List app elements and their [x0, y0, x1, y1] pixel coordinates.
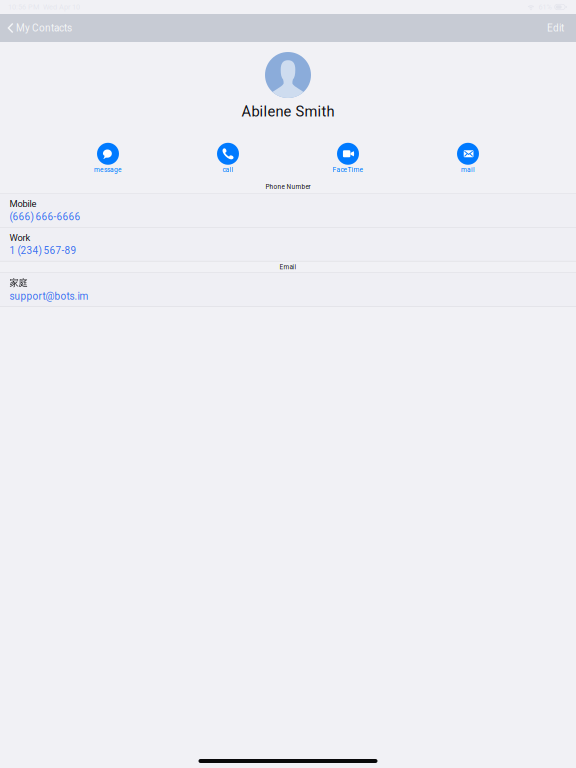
staticText: FaceTime: [332, 166, 363, 174]
staticText: Edit: [547, 22, 564, 34]
staticText: mail: [461, 166, 475, 174]
staticText: Work: [9, 232, 30, 243]
button[interactable]: call: [168, 142, 288, 174]
button[interactable]: message: [48, 142, 168, 174]
button[interactable]: My Contacts: [0, 14, 82, 42]
staticText: Abilene Smith: [241, 103, 334, 120]
button[interactable]: Edit: [537, 14, 576, 42]
staticText: (666) 666-6666: [9, 211, 80, 223]
staticText: message: [94, 166, 122, 174]
staticText: Phone Number: [265, 183, 310, 190]
staticText: support@bots.im: [9, 290, 88, 302]
button[interactable]: Mobile: [0, 194, 576, 227]
button[interactable]: Work: [0, 228, 576, 261]
staticText: call: [222, 166, 233, 174]
staticText: 家庭: [9, 277, 27, 289]
staticText: 10:56 PM Wed Apr 10: [8, 3, 80, 11]
button[interactable]: mail: [408, 142, 528, 174]
staticText: My Contacts: [16, 22, 72, 34]
staticText: 1 (234) 567-89: [9, 245, 76, 256]
staticText: Mobile: [9, 198, 36, 209]
staticText: Email: [279, 263, 296, 271]
button[interactable]: FaceTime: [288, 142, 408, 174]
button[interactable]: 家庭: [0, 273, 576, 306]
